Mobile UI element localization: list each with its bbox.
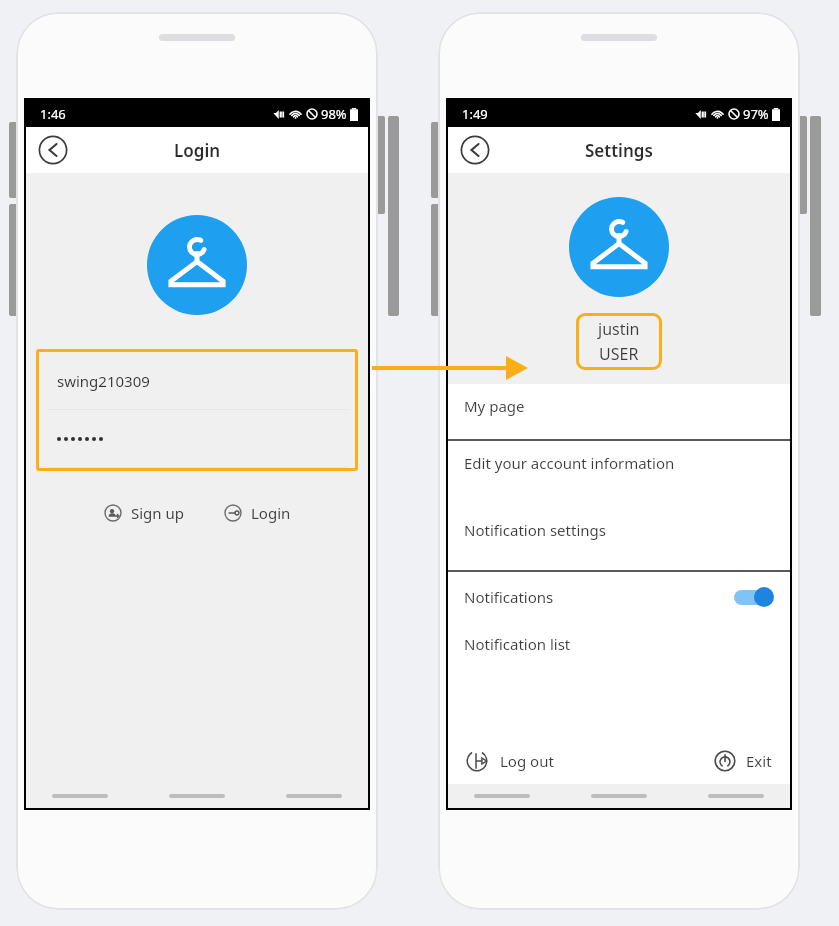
button[interactable]: Sign up [98, 499, 190, 527]
staticText: Login [174, 139, 221, 162]
button[interactable]: Notification list [448, 622, 790, 672]
staticText: USER [599, 343, 639, 365]
staticText: Sign up [131, 503, 184, 523]
staticText: 98% [321, 105, 347, 123]
button[interactable]: swing210309 [39, 352, 355, 410]
button[interactable]: justin [576, 313, 662, 370]
staticText: 1:46 [40, 105, 66, 123]
staticText: Edit your account information [464, 453, 675, 473]
button[interactable]: Back [708, 794, 764, 798]
button[interactable]: Log out [462, 746, 558, 776]
button[interactable]: Recents [52, 794, 108, 798]
staticText: 97% [743, 105, 769, 123]
button[interactable]: My page [448, 384, 790, 439]
button[interactable]: Back [460, 135, 490, 165]
staticText: swing210309 [57, 371, 150, 391]
staticText: Login [251, 503, 291, 523]
button[interactable] [39, 410, 355, 468]
staticText: Settings [585, 139, 653, 162]
staticText: Log out [500, 751, 554, 771]
staticText: Exit [746, 751, 772, 771]
button[interactable]: Login [218, 499, 297, 527]
staticText: Notification list [464, 634, 571, 654]
staticText: Notifications [464, 587, 554, 607]
button[interactable]: Notification settings [448, 508, 790, 570]
staticText: My page [464, 396, 525, 416]
button[interactable]: Back [38, 135, 68, 165]
staticText: justin [598, 318, 640, 340]
button[interactable]: Edit your account information [448, 441, 790, 508]
button[interactable]: Exit [710, 746, 776, 776]
button[interactable]: Recents [474, 794, 530, 798]
button[interactable]: Home [591, 794, 647, 798]
staticText: Notification settings [464, 520, 606, 540]
button[interactable]: Notifications [448, 572, 790, 622]
button[interactable]: Home [169, 794, 225, 798]
staticText: 1:49 [462, 105, 488, 123]
button[interactable]: Back [286, 794, 342, 798]
